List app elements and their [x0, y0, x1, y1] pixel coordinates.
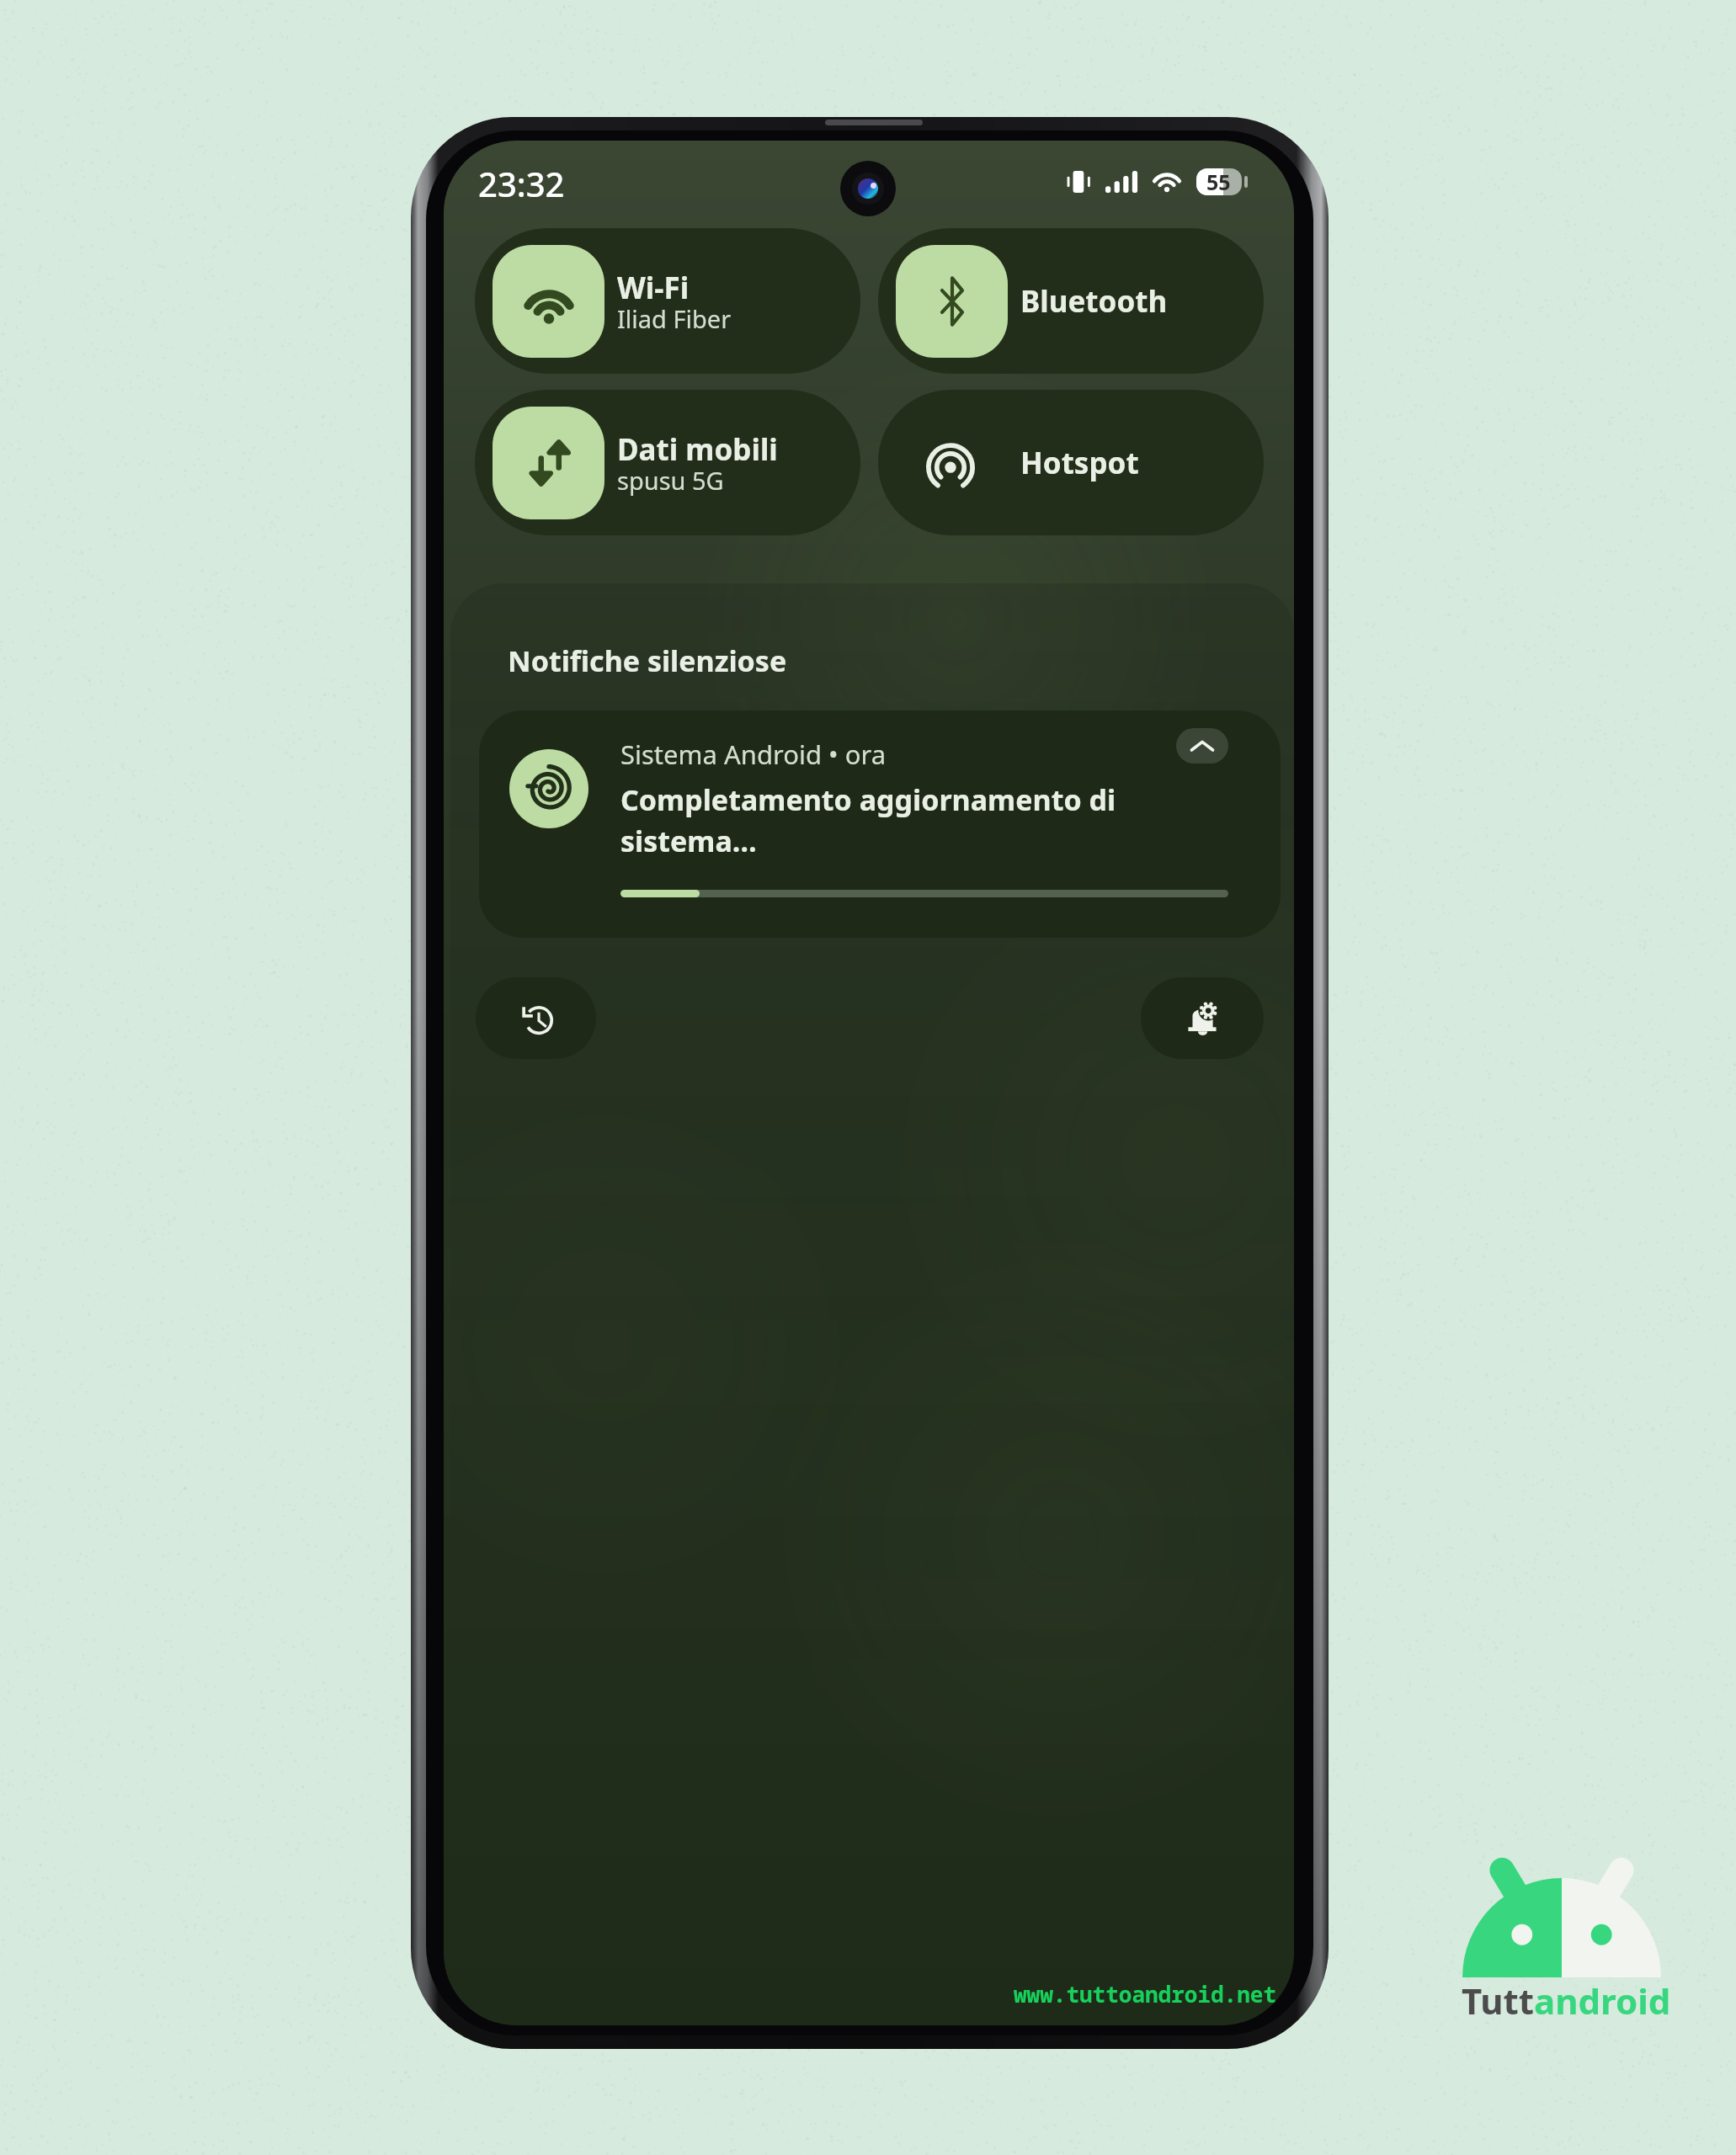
button[interactable]: Cronologia notifiche	[476, 977, 596, 1059]
staticText: Tutt	[1462, 1977, 1534, 2025]
staticText: 23:32	[478, 161, 565, 206]
button[interactable]: Espandi notifica	[1176, 728, 1228, 764]
button[interactable]: Sistema Android • ora	[479, 710, 1281, 938]
staticText: 55	[1206, 168, 1231, 194]
button[interactable]: Bluetooth	[878, 228, 1264, 374]
staticText: Dati mobili	[617, 429, 778, 470]
staticText: Completamento aggiornamento di sistema…	[620, 780, 1116, 860]
button[interactable]: Dati mobili	[475, 390, 860, 535]
staticText: www.tuttoandroid.net	[1014, 1979, 1277, 2009]
staticText: spusu 5G	[617, 464, 724, 497]
staticText: Iliad Fiber	[617, 302, 732, 335]
button[interactable]: Hotspot	[878, 390, 1264, 535]
staticText: Sistema Android • ora	[620, 737, 887, 772]
staticText: Wi-Fi	[617, 268, 690, 308]
staticText: android	[1534, 1977, 1671, 2025]
button[interactable]: Impostazioni notifiche	[1141, 977, 1264, 1059]
staticText: Notifiche silenziose	[508, 641, 787, 680]
button[interactable]: Wi-Fi	[475, 228, 860, 374]
staticText: Bluetooth	[1020, 281, 1168, 322]
staticText: Hotspot	[1020, 443, 1139, 483]
